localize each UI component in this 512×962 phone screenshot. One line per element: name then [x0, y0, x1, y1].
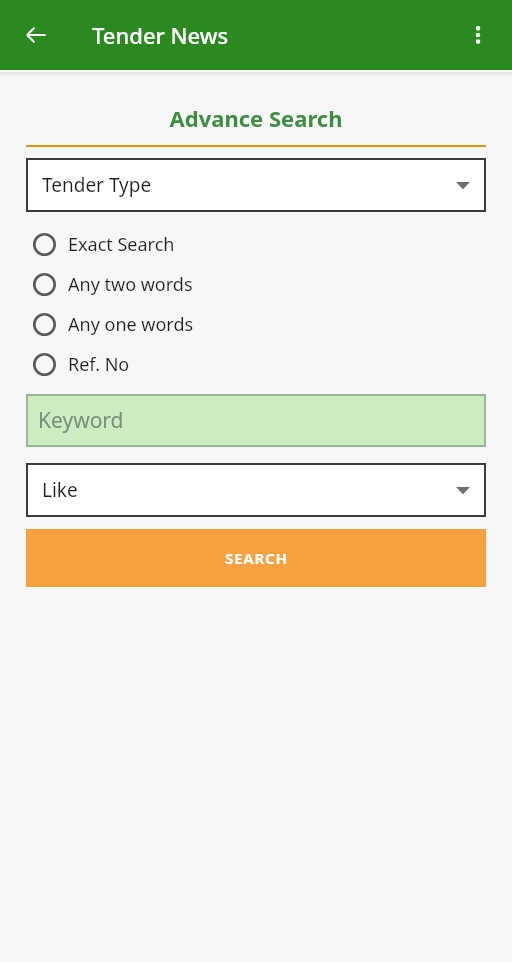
staticText: Advance Search [0, 103, 512, 133]
button[interactable]: Back [14, 13, 58, 57]
staticText: SEARCH [225, 548, 288, 568]
staticText: Ref. No [68, 352, 130, 377]
button[interactable]: Tender Type [26, 158, 486, 212]
button[interactable]: SEARCH [26, 529, 486, 587]
button[interactable]: Ref. No [0, 344, 512, 384]
staticText: Keyword [38, 406, 124, 435]
staticText: Tender News [92, 20, 229, 50]
button[interactable]: Exact Search [0, 224, 512, 264]
button[interactable]: Any two words [0, 264, 512, 304]
staticText: Like [42, 477, 78, 503]
button[interactable]: Any one words [0, 304, 512, 344]
staticText: Tender Type [42, 172, 152, 198]
staticText: Exact Search [68, 232, 175, 257]
staticText: Any two words [68, 272, 193, 297]
button[interactable]: Like [26, 463, 486, 517]
staticText: Any one words [68, 312, 194, 337]
button[interactable]: Keyword [26, 394, 486, 447]
button[interactable]: More options [456, 13, 500, 57]
